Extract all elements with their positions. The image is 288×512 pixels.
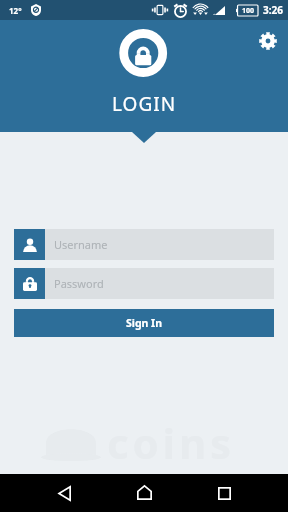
staticText: LOGIN xyxy=(112,91,177,117)
button[interactable]: Settings xyxy=(254,27,282,55)
staticText: Username xyxy=(54,237,108,252)
button[interactable]: Back xyxy=(44,474,84,512)
staticText: Password xyxy=(54,276,104,291)
staticText: 3:26 xyxy=(263,3,283,17)
staticText: Sign In xyxy=(126,316,163,330)
staticText: 12° xyxy=(9,5,22,16)
button[interactable]: Recent apps xyxy=(204,474,244,512)
button[interactable]: Home xyxy=(124,474,164,512)
button[interactable]: Username xyxy=(14,229,274,260)
staticText: 100 xyxy=(242,6,255,16)
button[interactable]: Sign In xyxy=(14,309,274,337)
button[interactable]: Password xyxy=(14,268,274,299)
